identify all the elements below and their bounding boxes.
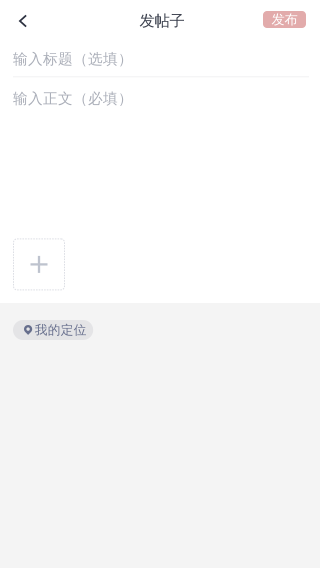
button[interactable]: 发布 [263,11,306,28]
staticText: 发布 [271,11,297,28]
staticText: 我的定位 [35,322,87,338]
staticText: 输入标题（选填） [13,50,133,68]
button[interactable]: 我的定位 [13,320,93,340]
button[interactable]: Back [0,0,46,42]
button[interactable]: Add photo [13,238,65,290]
button[interactable]: 输入正文（必填） [0,77,320,238]
staticText: 发帖子 [139,11,184,31]
button[interactable]: 输入标题（选填） [0,42,320,76]
staticText: 输入正文（必填） [13,89,133,108]
